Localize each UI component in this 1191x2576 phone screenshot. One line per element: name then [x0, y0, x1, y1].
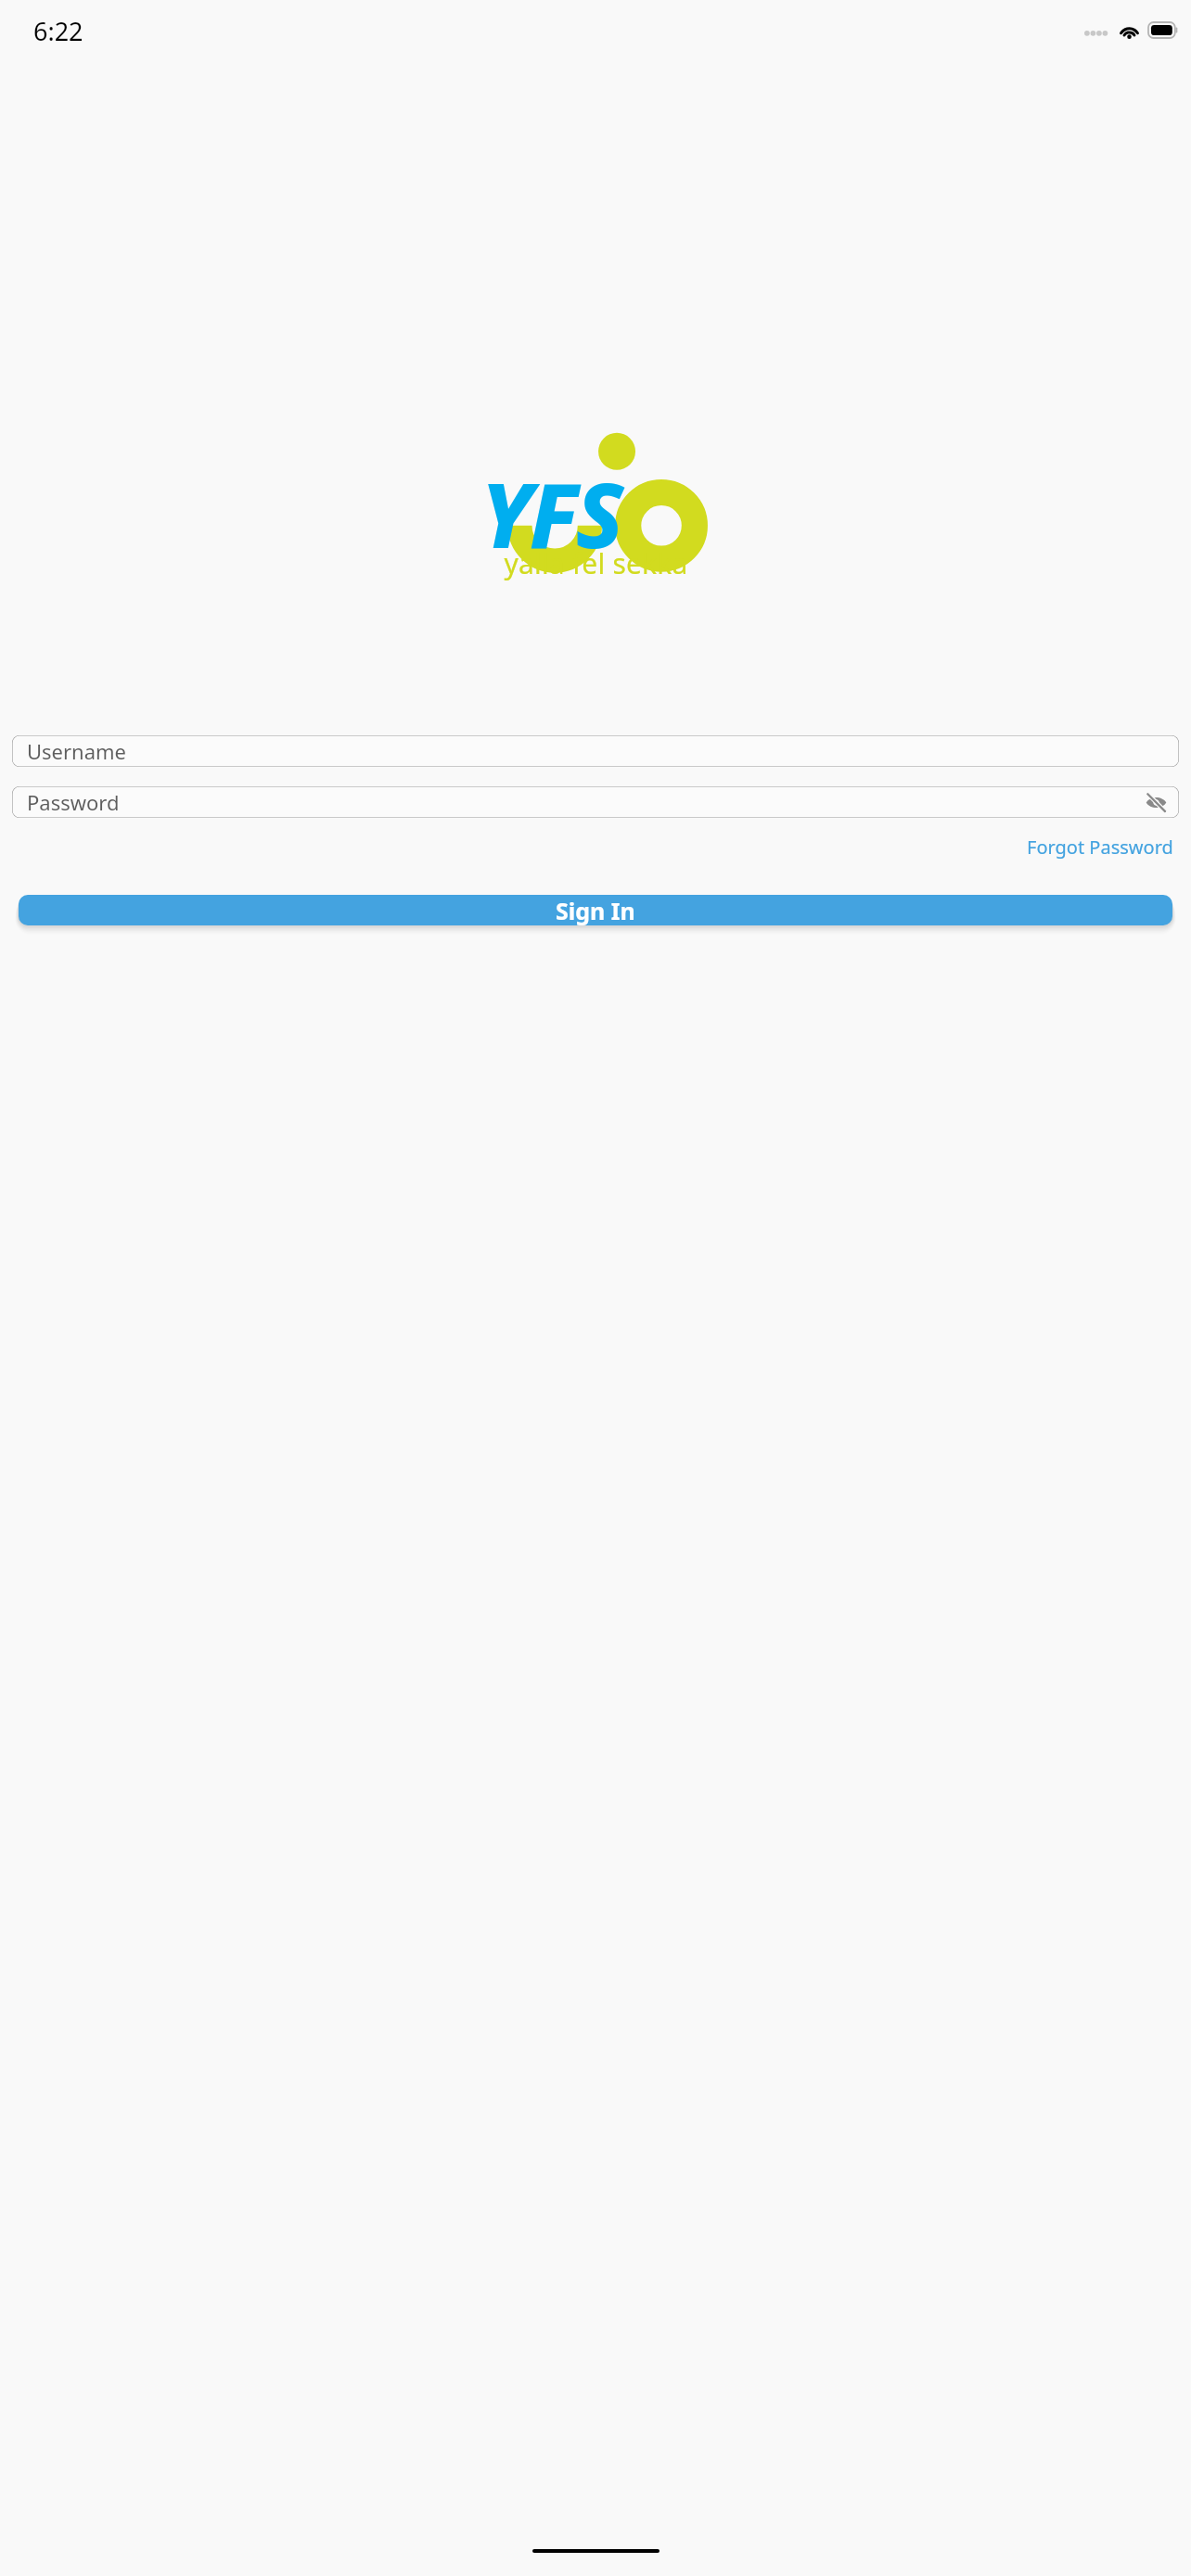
- staticText: YFS: [480, 453, 621, 574]
- button[interactable]: Forgot Password: [1025, 829, 1175, 865]
- staticText: yalla fel sekka: [504, 544, 688, 582]
- button[interactable]: Show password: [1143, 789, 1170, 816]
- staticText: Sign In: [556, 895, 635, 925]
- button[interactable]: Password: [12, 786, 1179, 818]
- staticText: 6:22: [33, 14, 83, 48]
- staticText: Forgot Password: [1027, 835, 1173, 860]
- staticText: Password: [27, 788, 120, 816]
- staticText: Username: [27, 737, 127, 765]
- button[interactable]: Sign In: [19, 895, 1172, 925]
- button[interactable]: Username: [12, 735, 1179, 767]
